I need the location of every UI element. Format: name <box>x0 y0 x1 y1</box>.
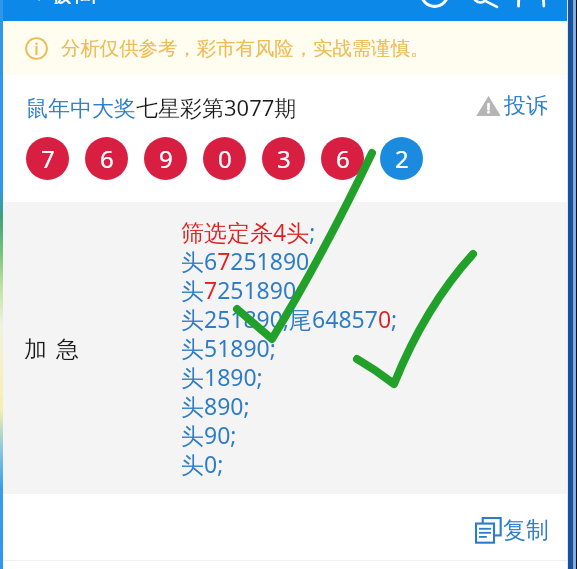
button[interactable]: 2 <box>380 137 423 180</box>
staticText: 投诉 <box>504 92 548 120</box>
staticText: 6 <box>100 142 114 175</box>
button[interactable]: Refresh <box>420 0 450 21</box>
staticText: 加 <box>24 335 47 364</box>
button[interactable]: 3 <box>262 137 305 180</box>
staticText: 筛选定杀4头; 头67251890, 头7251890; 头251890;尾64… <box>181 216 398 480</box>
button[interactable]: 6 <box>321 137 364 180</box>
button[interactable]: 6 <box>85 137 128 180</box>
button[interactable]: 9 <box>144 137 187 180</box>
staticText: 0 <box>218 142 232 175</box>
staticText: 分析仅供参考，彩市有风险，实战需谨慎。 <box>61 36 430 60</box>
button[interactable]: 0 <box>203 137 246 180</box>
button[interactable]: 返回 <box>29 0 97 4</box>
staticText: 返回 <box>51 0 97 4</box>
staticText: 3 <box>277 142 291 175</box>
staticText: 2 <box>395 142 409 175</box>
button[interactable]: 投诉 <box>476 92 548 120</box>
staticText: 鼠年中大奖七星彩第3077期 <box>26 92 297 122</box>
staticText: 急 <box>56 335 79 364</box>
button[interactable]: Shopping bag <box>512 0 550 21</box>
staticText: 9 <box>159 142 173 175</box>
button[interactable]: 7 <box>26 137 69 180</box>
staticText: 7 <box>41 142 55 175</box>
staticText: 复制 <box>503 516 549 545</box>
button[interactable]: Search <box>468 0 500 21</box>
staticText: 6 <box>336 142 350 175</box>
button[interactable]: 复制 <box>474 516 549 545</box>
